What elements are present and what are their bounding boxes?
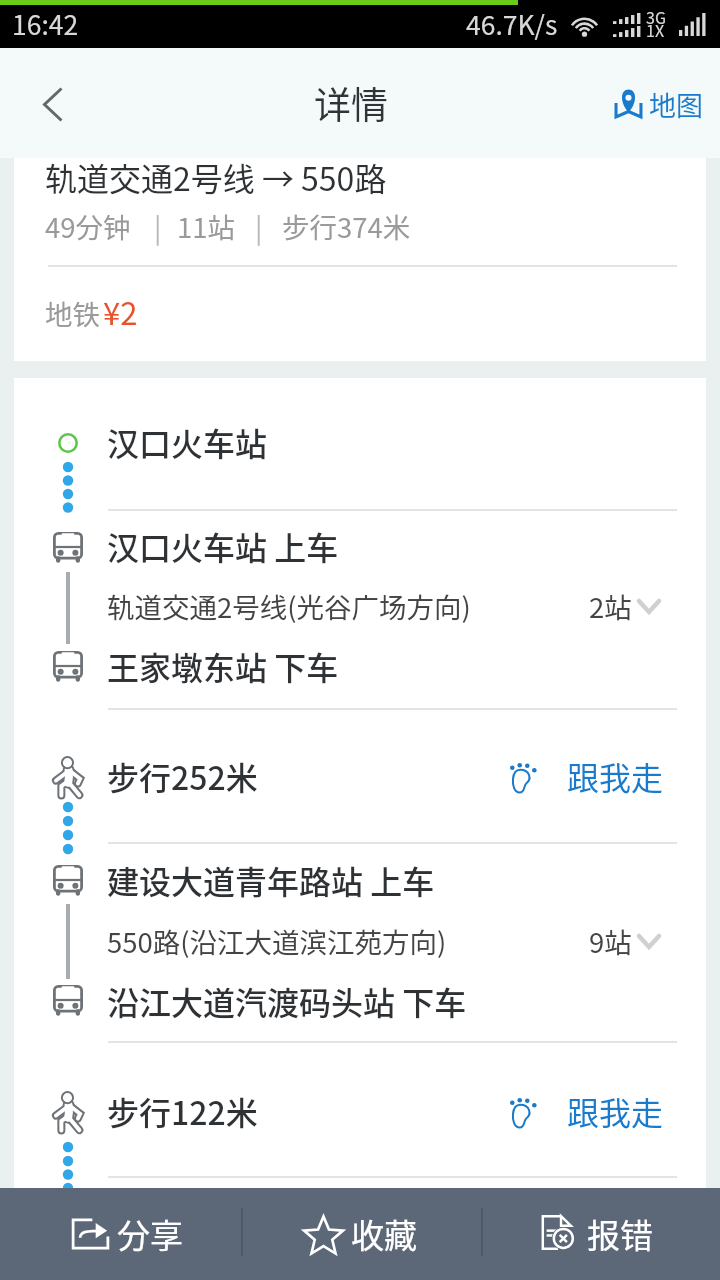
- button[interactable]: 跟我走: [500, 737, 670, 817]
- button[interactable]: 轨道交通2号线(光谷广场方向): [14, 576, 706, 636]
- staticText: 跟我走: [567, 753, 664, 799]
- staticText: 汉口火车站: [107, 419, 268, 465]
- staticText: ¥2: [103, 289, 138, 334]
- staticText: 沿江大道汽渡码头站 下车: [107, 978, 467, 1024]
- staticText: 报错: [587, 1210, 653, 1258]
- button[interactable]: 轨道交通2号线 → 550路: [14, 158, 706, 361]
- button[interactable]: 收藏: [242, 1188, 482, 1280]
- staticText: 步行374米: [282, 206, 411, 246]
- staticText: 步行122米: [107, 1088, 258, 1134]
- staticText: 详情: [314, 76, 388, 130]
- button[interactable]: 地图: [600, 48, 720, 158]
- staticText: 11站: [177, 206, 236, 246]
- staticText: 地图: [649, 85, 703, 124]
- button[interactable]: 550路(沿江大道滨江苑方向): [14, 911, 706, 971]
- staticText: 轨道交通2号线 → 550路: [45, 154, 387, 200]
- button[interactable]: 跟我走: [500, 1072, 670, 1152]
- staticText: |: [154, 206, 162, 246]
- staticText: 46.7K/s: [466, 4, 558, 42]
- staticText: 步行252米: [107, 753, 258, 799]
- staticText: 跟我走: [567, 1088, 664, 1134]
- staticText: 分享: [117, 1210, 183, 1258]
- staticText: |: [255, 206, 263, 246]
- staticText: 9站: [589, 921, 632, 961]
- button[interactable]: Back: [0, 48, 106, 158]
- staticText: 49分钟: [45, 206, 131, 246]
- staticText: 550路(沿江大道滨江苑方向): [107, 921, 447, 961]
- staticText: 建设大道青年路站 上车: [107, 857, 435, 903]
- button[interactable]: 分享: [0, 1188, 242, 1280]
- staticText: 地铁: [45, 293, 100, 333]
- staticText: 轨道交通2号线(光谷广场方向): [107, 586, 471, 626]
- staticText: 2站: [589, 586, 632, 626]
- button[interactable]: 报错: [482, 1188, 720, 1280]
- staticText: 16:42: [12, 4, 79, 42]
- staticText: 3G: [646, 5, 666, 28]
- staticText: 汉口火车站 上车: [107, 523, 339, 569]
- staticText: 1X: [646, 18, 665, 41]
- staticText: 收藏: [351, 1210, 417, 1258]
- staticText: 王家墩东站 下车: [107, 643, 339, 689]
